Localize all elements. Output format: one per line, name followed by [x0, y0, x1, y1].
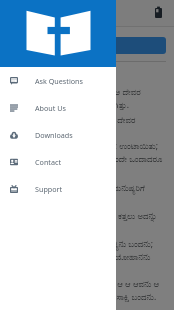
button[interactable]: Support: [0, 175, 116, 202]
staticText: ಎಲ್ಲವು ಆತನಿಂದ ಜೀವವು ಉಂಟಾಯಿತು; ಉಂಟಾಯಿತು;: [8, 140, 159, 152]
staticText: ಅವನ ಹೆಸರು ಯೋಹಾನನು ಯೋಹಾನ ಯೋಹಾನನು: [8, 251, 151, 263]
staticText: ಬೆಳಕಿನ ವಿಷಯವಾಗಿ ಕೊಡುವದಕ್ಕೆ ಆ ಆ ಸಾಕ್ಷಿ ಬಂ…: [8, 291, 157, 303]
staticText: Ask Questions: [35, 76, 83, 86]
staticText: ಯಾವದರಲ್ಲಿ ಒಂದಾದರೂ ಆತನಿಲ್ಲದೆ ಒಂದೇ ಒಂದಾದರೂ: [8, 153, 163, 165]
staticText: Downloads: [35, 130, 73, 140]
button[interactable]: App logo: [0, 0, 116, 67]
staticText: About Us: [35, 103, 66, 113]
staticText: Support: [35, 184, 63, 194]
staticText: ಎಲ್ಲರೂ ನಂಬುವಂತೆ ಸಾಕ್ಷಿಗಾಗಿ ಬಂದನು ಆ ಆ ಆವನ…: [8, 278, 160, 290]
staticText: ಆದಿಯಲ್ಲಿ ವಾಕ್ಯವಿತ್ತು; ಆ ವಾಕ್ಯವು ಅದು ಆ ದೇ…: [8, 86, 141, 98]
button[interactable]: Contact: [0, 148, 116, 175]
staticText: ಅದು ಆದಿಯಲ್ಲಿ ಆ ದೇವರ ಸಂಗಡ ಇತ್ತು ದೇವರ: [8, 114, 136, 126]
staticText: ಆತನಲ್ಲಿ ಜೀವವಿತ್ತು; ಆ ಜೀವವು ಬೆಳಕು ಮನುಷ್ಯರ…: [8, 182, 145, 194]
button[interactable]: Ask Questions: [0, 67, 116, 94]
staticText: ಬೆಳಕಾಗಿತ್ತು ಪ್ರಕಾಶಿಸುತ್ತದೆ; ಅದನ್ನು ಆ ಆ ಕ…: [8, 210, 158, 222]
button[interactable]: About Us: [0, 94, 116, 121]
staticText: ದೇವರಿಂದ ಕಳುಹಿಸಲ್ಪಟ್ಟ ಒಬ್ಬ ಆ ಮನುಷ್ಯನು ಬಂದ…: [8, 238, 154, 250]
staticText: Contact: [35, 157, 62, 167]
button[interactable]: Downloads: [0, 121, 116, 148]
button[interactable]: [8, 37, 166, 54]
staticText: ಸಂಗಡ ಇತ್ತು; ಆ ವಾಕ್ಯವು ಅದು ದೇವರಾಗಿತ್ತು.: [8, 99, 129, 111]
